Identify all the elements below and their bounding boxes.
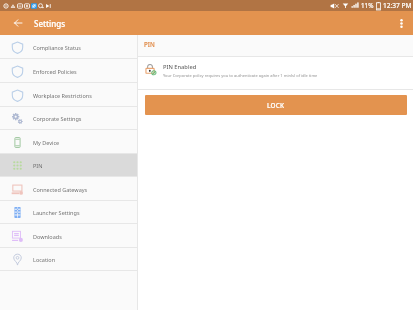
staticText: Location bbox=[33, 256, 56, 263]
staticText: Enforced Policies bbox=[33, 68, 77, 75]
staticText: 11% bbox=[361, 1, 374, 10]
button[interactable]: Back bbox=[10, 15, 26, 31]
staticText: Corporate Settings bbox=[33, 115, 82, 122]
staticText: Connected Gateways bbox=[33, 186, 88, 193]
staticText: PIN Enabled bbox=[163, 63, 197, 71]
button[interactable]: LOCK bbox=[145, 95, 407, 115]
staticText: PIN bbox=[33, 162, 43, 169]
staticText: Launcher Settings bbox=[33, 209, 80, 216]
staticText: Your Corporate policy requires you to au… bbox=[163, 73, 318, 78]
staticText: Settings bbox=[34, 18, 66, 29]
button[interactable]: Corporate Settings bbox=[0, 107, 137, 130]
staticText: Workplace Restrictions bbox=[33, 92, 92, 99]
button[interactable]: Downloads bbox=[0, 224, 137, 248]
button[interactable]: Launcher Settings bbox=[0, 201, 137, 224]
button[interactable]: PIN Enabled bbox=[138, 57, 413, 89]
staticText: PIN bbox=[144, 40, 155, 48]
button[interactable]: PIN bbox=[0, 154, 137, 177]
staticText: Compliance Status bbox=[33, 44, 81, 51]
staticText: Downloads bbox=[33, 233, 62, 240]
button[interactable]: Connected Gateways bbox=[0, 177, 137, 201]
button[interactable]: Location bbox=[0, 248, 137, 271]
button[interactable]: My Device bbox=[0, 130, 137, 154]
button[interactable]: Compliance Status bbox=[0, 35, 137, 59]
staticText: LOCK bbox=[267, 101, 285, 110]
button[interactable]: More options bbox=[393, 15, 409, 31]
staticText: My Device bbox=[33, 139, 60, 146]
button[interactable]: Workplace Restrictions bbox=[0, 83, 137, 107]
button[interactable]: Enforced Policies bbox=[0, 59, 137, 83]
staticText: 12:37 PM bbox=[383, 1, 412, 10]
